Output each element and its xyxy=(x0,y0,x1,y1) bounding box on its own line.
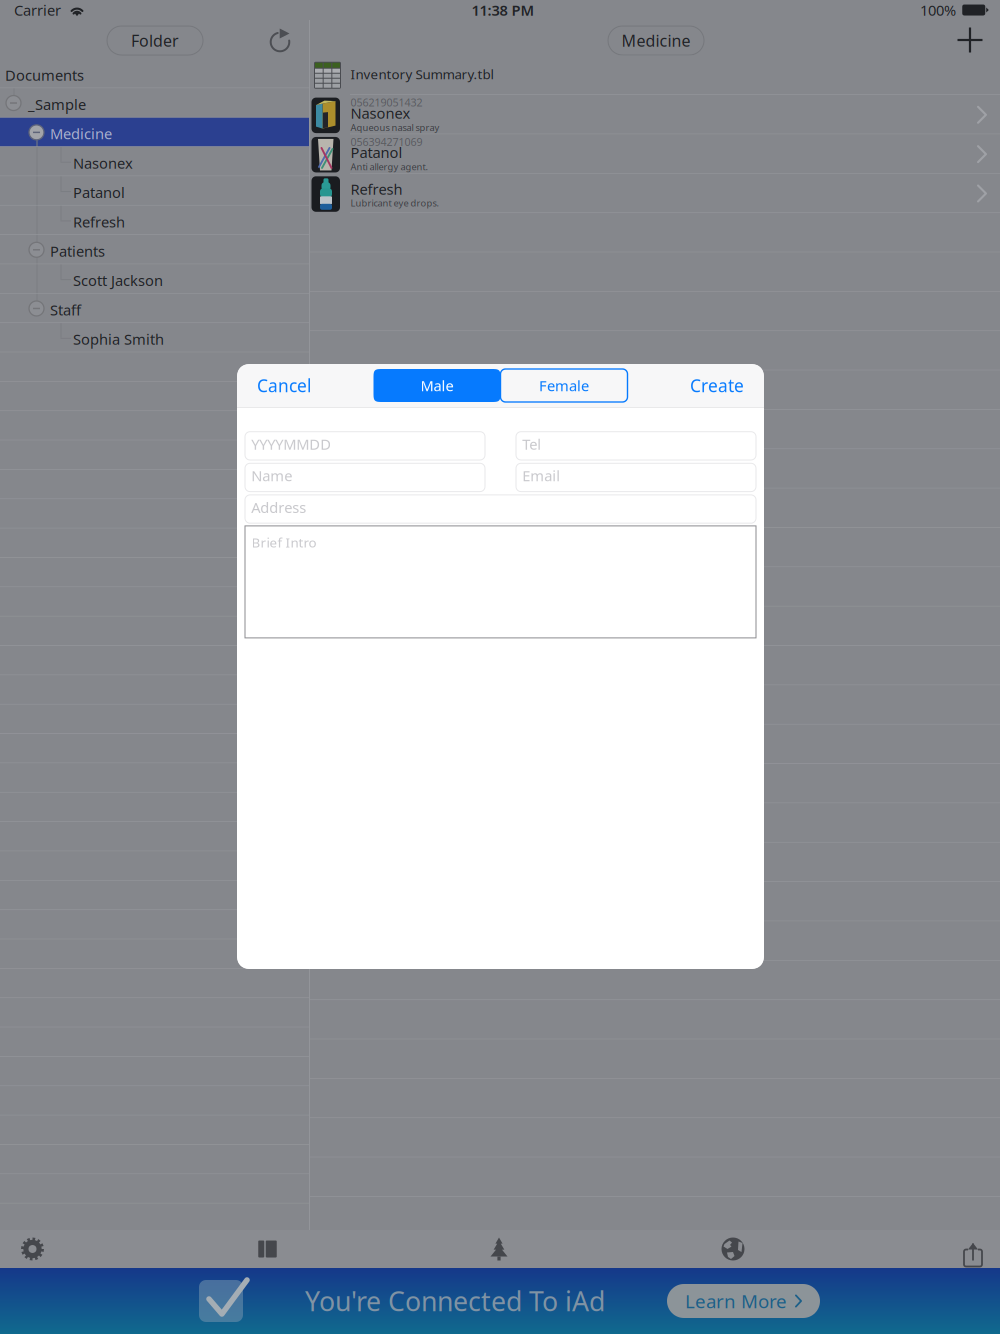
button[interactable]: Female xyxy=(500,369,627,402)
staticText: YYYYMMDD xyxy=(251,434,331,454)
staticText: Female xyxy=(539,376,589,395)
staticText: Scott Jackson xyxy=(73,271,163,290)
button[interactable]: Documents xyxy=(0,59,309,88)
staticText: Create xyxy=(690,374,744,397)
button[interactable]: Web xyxy=(721,1237,745,1261)
button[interactable]: Refresh xyxy=(310,174,1000,213)
staticText: Male xyxy=(420,376,453,395)
staticText: Cancel xyxy=(257,374,311,397)
staticText: 056394271069 xyxy=(351,135,423,149)
button[interactable]: 056394271069 xyxy=(310,134,1000,174)
staticText: Carrier xyxy=(14,0,61,20)
button[interactable]: Folder xyxy=(107,26,203,55)
staticText: 056219051432 xyxy=(351,95,423,110)
button[interactable]: Settings xyxy=(20,1236,45,1261)
staticText: Inventory Summary.tbl xyxy=(351,65,494,83)
staticText: Patients xyxy=(50,241,105,261)
staticText: Lubricant eye drops. xyxy=(351,197,440,209)
button[interactable]: Inventory Summary.tbl xyxy=(310,56,1000,95)
staticText: Nasonex xyxy=(351,103,411,123)
button[interactable]: _Sample xyxy=(0,88,309,118)
button[interactable]: Scott Jackson xyxy=(0,264,309,294)
staticText: 11:38 PM xyxy=(471,0,534,20)
button[interactable]: Refresh xyxy=(266,26,294,54)
staticText: Brief Intro xyxy=(251,533,316,551)
staticText: Learn More xyxy=(685,1289,787,1313)
staticText: Refresh xyxy=(73,212,125,231)
button[interactable]: Patients xyxy=(0,235,309,264)
staticText: Patanol xyxy=(351,143,403,162)
button[interactable]: Share xyxy=(958,1235,982,1262)
staticText: Refresh xyxy=(351,179,403,199)
staticText: Address xyxy=(251,497,306,517)
button[interactable]: Medicine xyxy=(0,118,309,147)
staticText: 100% xyxy=(920,0,956,20)
button[interactable]: Learn More xyxy=(667,1284,820,1318)
staticText: Medicine xyxy=(50,124,112,143)
staticText: Staff xyxy=(50,300,81,319)
staticText: _Sample xyxy=(28,94,86,114)
staticText: Anti allergy agent. xyxy=(351,160,429,173)
button[interactable]: Medicine xyxy=(608,26,704,55)
staticText: Sophia Smith xyxy=(73,329,164,349)
button[interactable]: 056219051432 xyxy=(310,95,1000,134)
staticText: Aqueous nasal spray xyxy=(351,121,440,133)
button[interactable]: Male xyxy=(373,369,500,402)
button[interactable]: Create xyxy=(690,364,744,407)
staticText: Medicine xyxy=(621,30,690,51)
button[interactable]: Split view xyxy=(258,1240,277,1257)
button[interactable]: Outline xyxy=(490,1237,508,1260)
button[interactable]: Patanol xyxy=(0,176,309,206)
staticText: Tel xyxy=(522,434,541,454)
staticText: Patanol xyxy=(73,183,125,202)
button[interactable]: Add xyxy=(955,25,985,55)
button[interactable]: Refresh xyxy=(0,206,309,235)
staticText: Documents xyxy=(5,65,84,85)
button[interactable]: Cancel xyxy=(257,364,311,407)
staticText: Email xyxy=(522,466,560,485)
button[interactable]: Nasonex xyxy=(0,147,309,176)
button[interactable]: Sophia Smith xyxy=(0,323,309,352)
staticText: Name xyxy=(251,466,292,485)
staticText: You're Connected To iAd xyxy=(305,1283,605,1319)
staticText: Nasonex xyxy=(73,153,133,173)
button[interactable]: Staff xyxy=(0,294,309,323)
staticText: Folder xyxy=(131,30,179,51)
